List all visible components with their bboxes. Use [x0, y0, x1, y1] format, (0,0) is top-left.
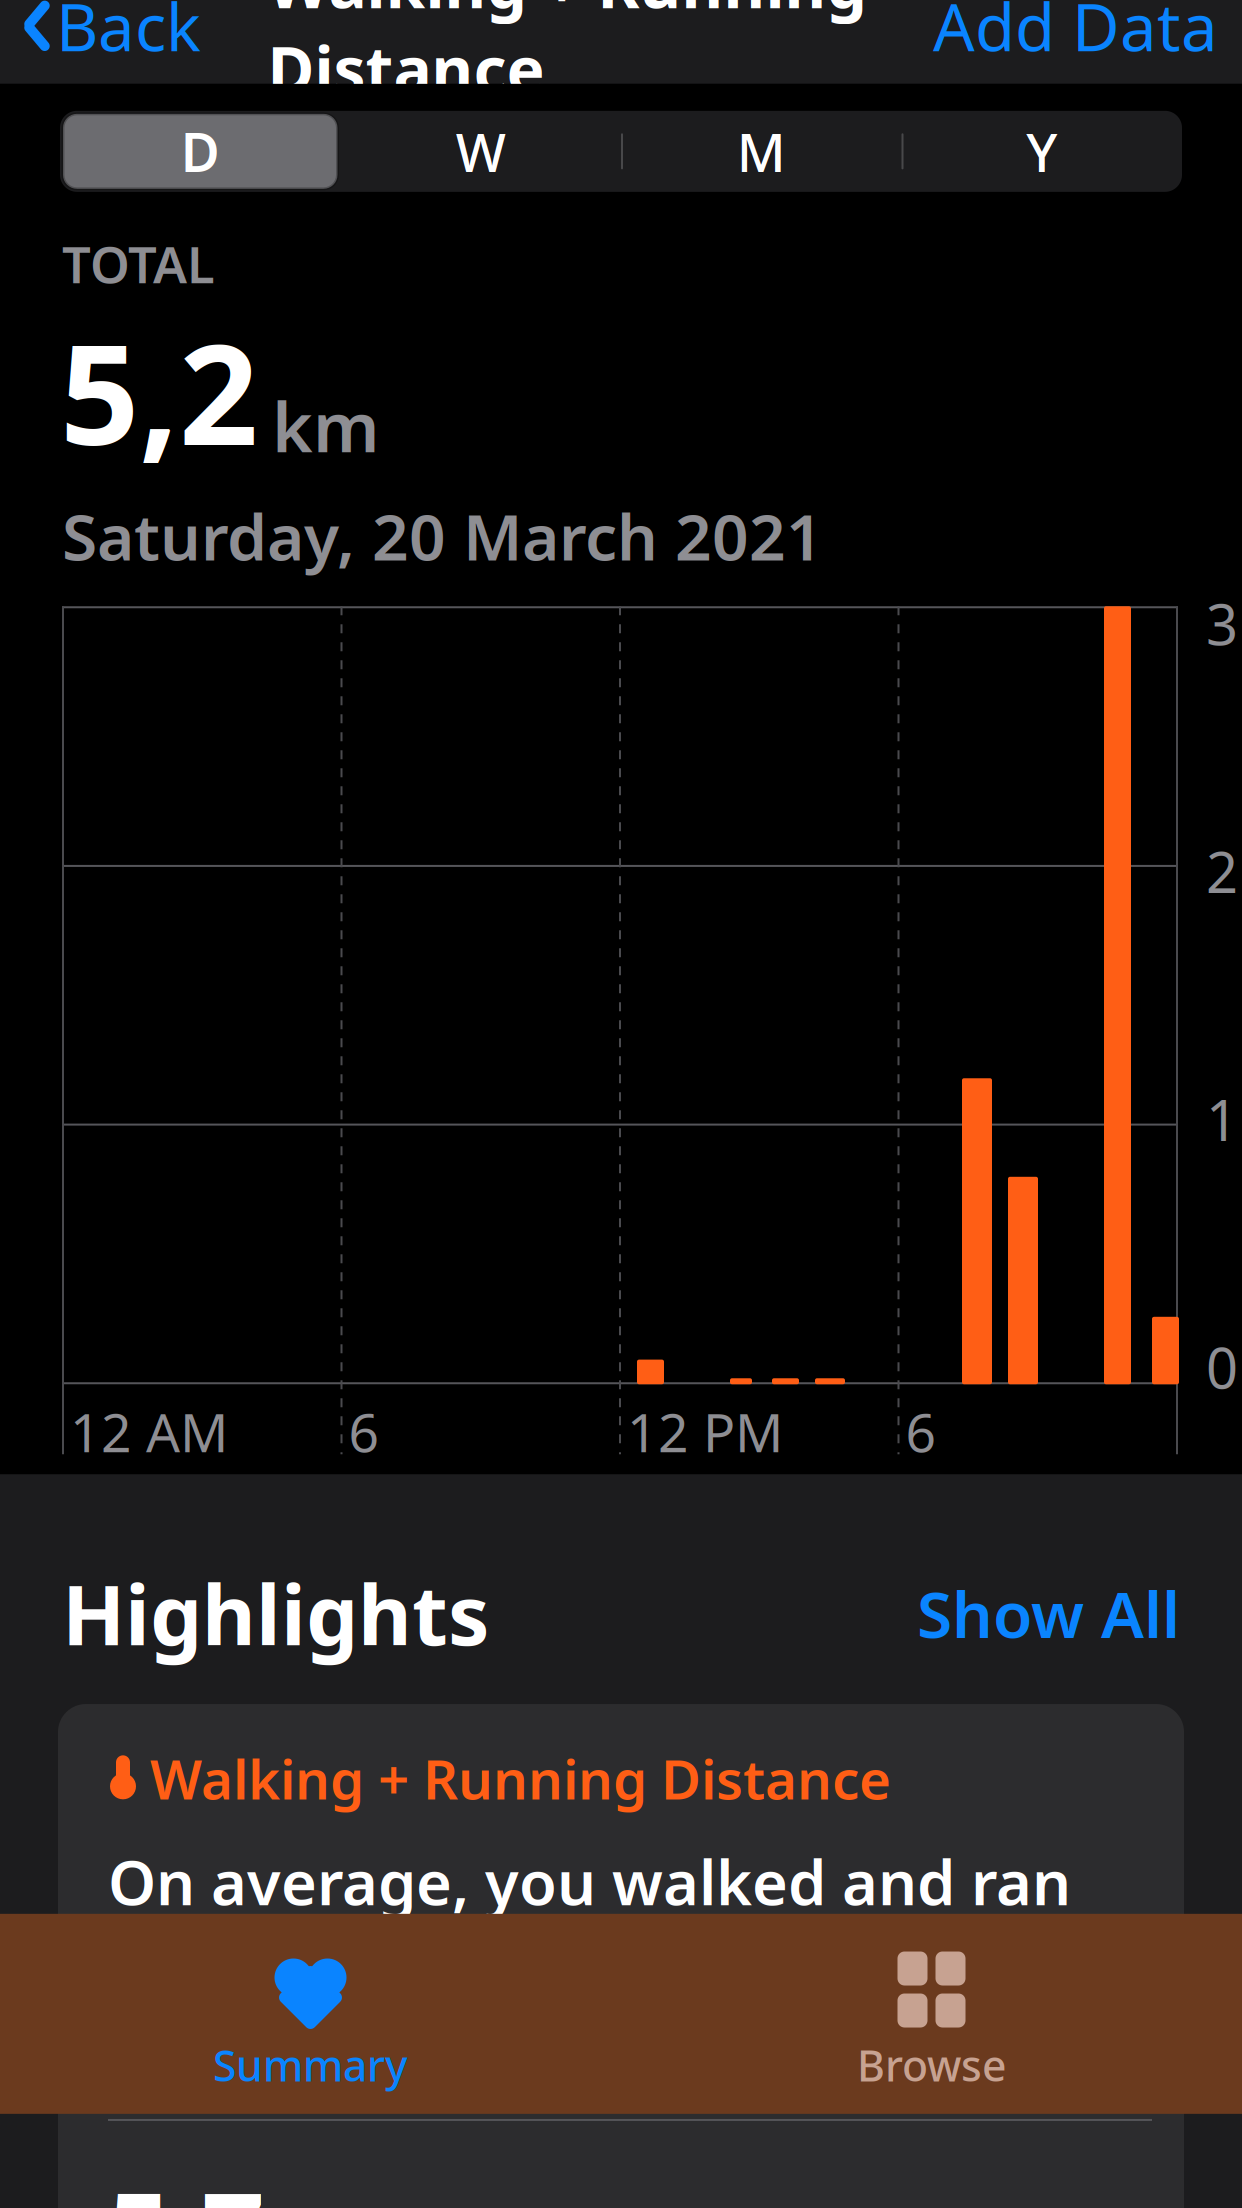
staticText: Walking + Running Distance	[267, 0, 866, 111]
staticText: Show All	[917, 1571, 1180, 1656]
staticText: 3	[1206, 586, 1238, 661]
staticText: 6	[905, 1396, 936, 1467]
staticText: Highlights	[62, 1558, 489, 1668]
staticText: Saturday, 20 March 2021	[62, 493, 823, 578]
staticText: Walking + Running Distance	[150, 1742, 891, 1815]
button[interactable]: Back	[0, 0, 209, 79]
staticText: Summary	[213, 2036, 408, 2093]
button[interactable]: Add Data	[925, 0, 1242, 79]
staticText: 1	[1206, 1082, 1238, 1156]
staticText: W	[456, 116, 506, 187]
staticText: 12 PM	[627, 1396, 783, 1467]
staticText: 5,2	[60, 299, 258, 483]
staticText: D	[181, 116, 220, 187]
staticText: 0	[1206, 1330, 1238, 1404]
button[interactable]: Walking + Running Distance	[58, 1704, 1184, 2208]
staticText: Back	[56, 0, 201, 69]
button[interactable]: Summary	[0, 1934, 621, 2093]
button[interactable]: W	[340, 111, 621, 192]
staticText: Y	[1026, 116, 1057, 187]
button[interactable]: Browse	[621, 1934, 1242, 2093]
staticText: M	[737, 116, 786, 187]
staticText: 5,7	[108, 2157, 265, 2208]
button[interactable]: M	[621, 111, 901, 192]
staticText: TOTAL	[62, 230, 215, 297]
staticText: 12 AM	[70, 1396, 228, 1467]
button[interactable]: Y	[901, 111, 1182, 192]
staticText: 6	[348, 1396, 379, 1467]
staticText: Browse	[857, 2036, 1006, 2093]
staticText: km	[272, 379, 380, 471]
staticText: 2	[1206, 834, 1238, 908]
staticText: Add Data	[933, 0, 1218, 69]
button[interactable]: Show All	[901, 1563, 1180, 1664]
button[interactable]: D	[60, 111, 340, 192]
staticText: On average, you walked and ran less last…	[108, 1841, 1071, 2085]
